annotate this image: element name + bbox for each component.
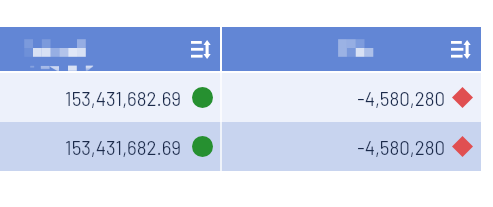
button[interactable]: Sort first column xyxy=(0,27,221,71)
button[interactable]: Sort first column xyxy=(191,40,212,59)
staticText: -4,580,280 xyxy=(221,136,445,158)
button[interactable]: Sort second column xyxy=(221,27,481,71)
button[interactable]: 153,431,682.69 xyxy=(0,122,221,171)
button[interactable]: 153,431,682.69 xyxy=(0,73,221,122)
staticText: 153,431,682.69 xyxy=(0,136,181,158)
button[interactable]: -4,580,280 xyxy=(221,73,481,122)
button[interactable]: -4,580,280 xyxy=(221,122,481,171)
staticText: -4,580,280 xyxy=(221,87,445,109)
button[interactable]: Sort second column xyxy=(451,40,472,59)
staticText: 153,431,682.69 xyxy=(0,87,181,109)
